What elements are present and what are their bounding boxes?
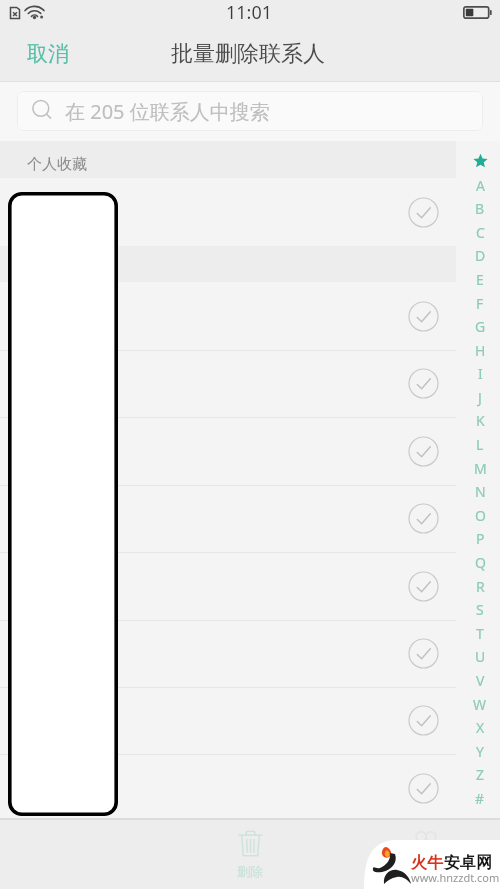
staticText: #	[475, 789, 485, 808]
button[interactable]: Select contact	[0, 754, 500, 822]
staticText: K	[476, 411, 485, 430]
button[interactable]: Select contact	[0, 687, 500, 754]
button[interactable]: Select contact	[0, 552, 500, 620]
staticText: V	[476, 671, 485, 690]
staticText: F	[476, 294, 484, 313]
other: Select contact	[408, 368, 439, 399]
button[interactable]: Alphabet index	[467, 0, 493, 889]
staticText: D	[475, 246, 486, 265]
staticText: C	[476, 223, 485, 242]
staticText: B	[475, 199, 485, 218]
staticText: U	[475, 647, 486, 666]
staticText: 火牛	[411, 853, 443, 873]
button[interactable]: Select contact	[0, 350, 500, 417]
staticText: R	[476, 577, 485, 596]
other: Select contact	[408, 301, 439, 332]
staticText: 11:01	[226, 0, 273, 25]
button[interactable]: 取消	[0, 33, 93, 75]
button[interactable]: Select contact	[0, 822, 500, 889]
button[interactable]: Select all	[402, 830, 450, 854]
other: Select contact	[408, 773, 439, 804]
staticText: T	[476, 624, 484, 643]
staticText: P	[476, 529, 485, 548]
staticText: S	[476, 600, 484, 619]
button[interactable]: Select contact	[0, 178, 500, 246]
staticText: W	[473, 695, 487, 714]
staticText: 个人收藏	[27, 155, 87, 174]
staticText: www.hnzzdt.com	[411, 870, 500, 885]
other: Select contact	[408, 197, 439, 228]
staticText: H	[475, 341, 486, 360]
button[interactable]: 在 205 位联系人中搜索	[17, 91, 483, 131]
button[interactable]: Select contact	[0, 282, 500, 350]
staticText: I	[478, 364, 483, 383]
staticText: 在 205 位联系人中搜索	[65, 98, 270, 125]
staticText: Z	[476, 765, 485, 784]
other: Select contact	[408, 571, 439, 602]
staticText: M	[474, 459, 487, 478]
staticText: 批量删除联系人	[171, 40, 325, 68]
staticText: G	[475, 317, 486, 336]
staticText: Y	[476, 742, 484, 761]
staticText: A	[476, 176, 485, 195]
button[interactable]: 删除	[225, 830, 275, 879]
other: Select contact	[408, 840, 439, 871]
other: Select contact	[408, 503, 439, 534]
button[interactable]: Select contact	[0, 620, 500, 687]
staticText: J	[478, 388, 482, 407]
staticText: O	[475, 506, 486, 525]
other: Select contact	[408, 705, 439, 736]
staticText: 安卓网	[444, 853, 492, 873]
staticText: 取消	[27, 41, 69, 67]
other: Select contact	[408, 436, 439, 467]
staticText: Q	[475, 553, 486, 572]
staticText: N	[475, 482, 486, 501]
staticText: 删除	[237, 863, 263, 879]
button[interactable]: Select contact	[0, 417, 500, 485]
button[interactable]: Select contact	[0, 485, 500, 552]
staticText: X	[476, 718, 485, 737]
other: Select contact	[408, 638, 439, 669]
staticText: L	[476, 435, 484, 454]
staticText: E	[476, 270, 484, 289]
